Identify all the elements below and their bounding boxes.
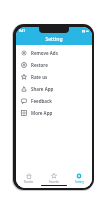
staticText: Feedback — [31, 98, 52, 104]
staticText: More App — [31, 110, 53, 116]
button[interactable]: Puzzles — [17, 172, 41, 185]
staticText: Setting — [75, 180, 84, 184]
button[interactable]: Share App — [16, 83, 92, 95]
staticText: Rate us — [31, 74, 48, 80]
staticText: 9:41 — [19, 29, 25, 33]
staticText: Favorite — [49, 180, 60, 184]
staticText: Share App — [31, 86, 54, 92]
staticText: Remove Ads — [31, 50, 58, 56]
button[interactable]: More App — [16, 107, 92, 119]
staticText: Restore — [31, 62, 48, 68]
button[interactable]: Restore — [16, 59, 92, 71]
staticText: Setting — [45, 36, 63, 43]
button[interactable]: Favorite — [42, 172, 66, 185]
button[interactable]: Remove Ads — [16, 47, 92, 59]
button[interactable]: Rate us — [16, 71, 92, 83]
staticText: Puzzles — [24, 180, 34, 184]
button[interactable]: Setting — [67, 172, 91, 185]
button[interactable]: Feedback — [16, 95, 92, 107]
staticText: ▮▮ ▬ — [82, 29, 89, 33]
